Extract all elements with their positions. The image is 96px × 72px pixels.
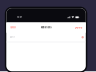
button[interactable]: Cancel	[10, 25, 16, 30]
button[interactable]: Done	[74, 25, 82, 30]
staticText: Cancel	[10, 26, 15, 29]
button[interactable]: Clear text	[81, 36, 84, 38]
staticText: 10:07	[17, 16, 22, 18]
staticText: Name	[10, 36, 15, 38]
staticText: Done	[75, 26, 82, 29]
staticText: Add to Items	[40, 26, 51, 29]
